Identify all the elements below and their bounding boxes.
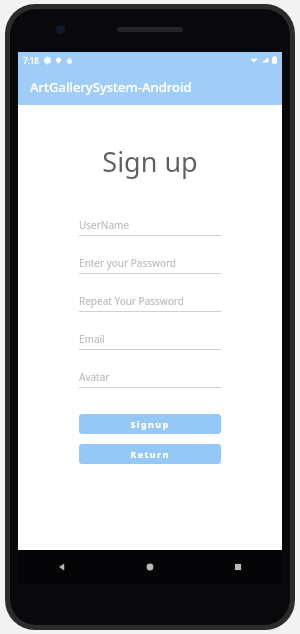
button[interactable]: Signup (79, 414, 221, 434)
staticText: Signup (130, 418, 170, 430)
button[interactable]: Return (79, 444, 221, 464)
button[interactable]: UserName (79, 218, 221, 236)
staticText: Avatar (79, 370, 110, 384)
button[interactable]: Home (106, 550, 194, 584)
button[interactable]: Back (18, 550, 106, 584)
staticText: Sign up (102, 143, 198, 180)
button[interactable]: Enter your Password (79, 256, 221, 274)
staticText: 7:18 (23, 55, 39, 66)
staticText: Return (130, 448, 170, 460)
staticText: Enter your Password (79, 256, 177, 270)
button[interactable]: Repeat Your Password (79, 294, 221, 312)
staticText: Repeat Your Password (79, 294, 184, 308)
staticText: Email (79, 332, 105, 346)
staticText: UserName (79, 218, 130, 232)
button[interactable]: Recents (194, 550, 282, 584)
button[interactable]: Avatar (79, 370, 221, 388)
staticText: ArtGallerySystem-Android (30, 78, 192, 96)
button[interactable]: Email (79, 332, 221, 350)
